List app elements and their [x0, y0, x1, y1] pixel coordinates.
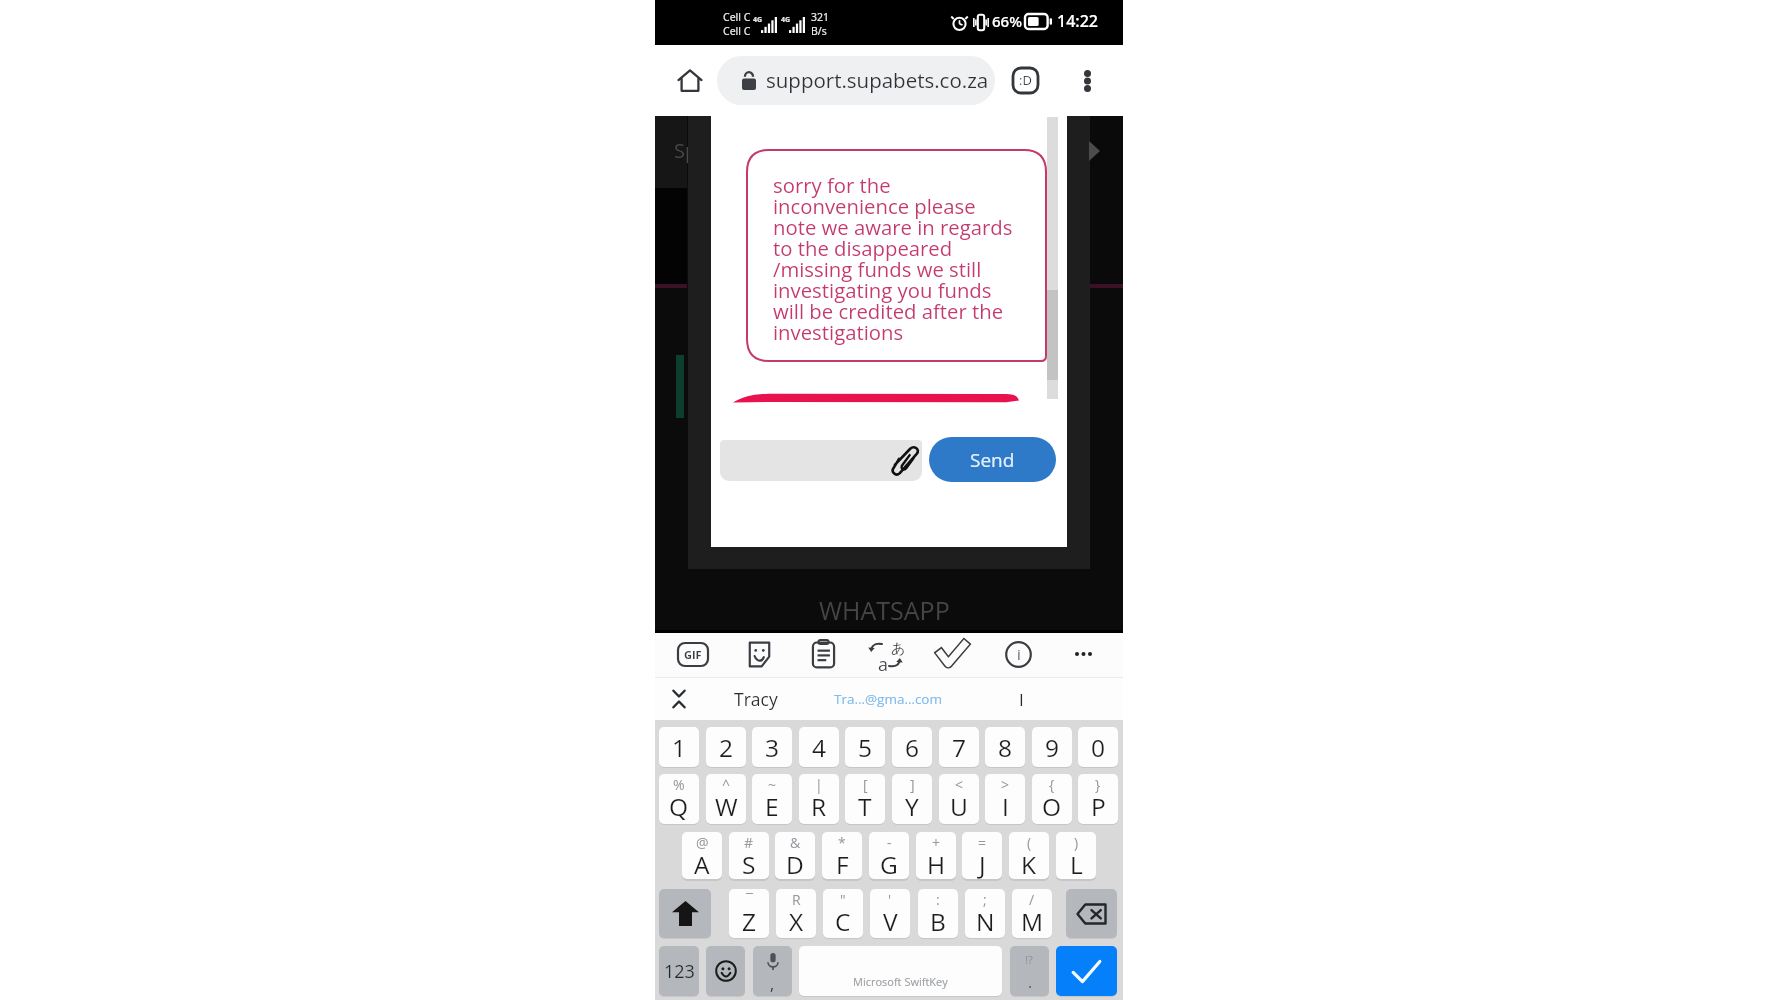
button[interactable]: Attach file [888, 441, 922, 480]
staticText: | [815, 775, 823, 794]
button[interactable]: 2 [706, 727, 746, 767]
button[interactable]: > [985, 774, 1025, 824]
staticText: ~ [768, 775, 777, 794]
button[interactable]: 0 [1078, 727, 1118, 767]
staticText: 14:22 [1057, 10, 1098, 32]
button[interactable]: 1 [659, 727, 699, 767]
button[interactable]: R [776, 889, 816, 938]
staticText: F [836, 848, 849, 879]
staticText: WHATSAPP [819, 593, 950, 627]
button[interactable]: - [869, 832, 909, 879]
button[interactable]: ¯ [729, 889, 769, 938]
staticText: ) [1074, 833, 1079, 852]
button[interactable]: Enter [1056, 946, 1117, 996]
staticText: = [978, 833, 987, 852]
button[interactable]: ] [892, 774, 932, 824]
staticText: P [1091, 790, 1106, 823]
staticText: 6 [905, 731, 920, 764]
staticText: / [1029, 890, 1035, 909]
button[interactable]: Emoji [706, 946, 745, 996]
button[interactable]: = [962, 832, 1002, 879]
button[interactable]: Type a message [720, 440, 922, 481]
button[interactable]: : [918, 889, 958, 938]
button[interactable]: I [986, 678, 1056, 720]
staticText: + [932, 833, 941, 852]
button[interactable]: support.supabets.co.za [717, 56, 995, 105]
staticText: Tra…@gma…com [834, 690, 942, 708]
button[interactable]: < [939, 774, 979, 824]
button[interactable]: Shift [659, 889, 711, 938]
button[interactable]: & [775, 832, 815, 879]
staticText: Z [742, 905, 757, 938]
staticText: あ [891, 640, 906, 658]
button[interactable]: * [822, 832, 862, 879]
staticText: sorry for the inconvenience please note … [773, 171, 1013, 345]
button[interactable]: { [1032, 774, 1072, 824]
staticText: 2 [719, 731, 734, 764]
button[interactable]: GIF [669, 632, 717, 676]
button[interactable]: Space [799, 946, 1002, 996]
button[interactable]: 4 [799, 727, 839, 767]
button[interactable]: Voice input [753, 946, 792, 996]
button[interactable]: # [729, 832, 769, 879]
staticText: Sp [674, 137, 698, 164]
staticText: X [789, 905, 804, 938]
button[interactable]: ( [1009, 832, 1049, 879]
button[interactable]: More [1059, 632, 1107, 676]
button[interactable]: 8 [985, 727, 1025, 767]
staticText: ' [888, 890, 892, 909]
staticText: ] [910, 775, 915, 794]
button[interactable]: ~ [752, 774, 792, 824]
button[interactable]: Punctuation [1010, 946, 1049, 996]
staticText: 4G [753, 15, 763, 25]
staticText: 66% [992, 11, 1022, 31]
button[interactable]: Backspace [1066, 889, 1117, 938]
button[interactable]: Stickers [735, 632, 783, 676]
button[interactable]: Tra…@gma…com [814, 678, 962, 720]
button[interactable]: + [916, 832, 956, 879]
staticText: a [878, 652, 889, 677]
staticText: Y [905, 790, 919, 823]
button[interactable]: 6 [892, 727, 932, 767]
button[interactable]: Translate [863, 632, 911, 676]
staticText: 321 B/s [811, 10, 830, 38]
staticText: 9 [1045, 731, 1060, 764]
button[interactable]: @ [682, 832, 722, 879]
button[interactable]: Switch tabs [999, 45, 1051, 116]
staticText: ^ [722, 775, 731, 794]
staticText: H [927, 848, 946, 879]
staticText: . [1028, 971, 1033, 993]
button[interactable]: ; [965, 889, 1005, 938]
button[interactable]: 7 [939, 727, 979, 767]
button[interactable]: / [1012, 889, 1052, 938]
button[interactable]: Editor [928, 632, 976, 676]
button[interactable]: ) [1056, 832, 1096, 879]
button[interactable]: % [659, 774, 699, 824]
button[interactable]: Send [929, 437, 1056, 482]
button[interactable]: 9 [1032, 727, 1072, 767]
button[interactable]: [ [845, 774, 885, 824]
staticText: S [742, 848, 756, 879]
staticText: T [858, 790, 872, 823]
button[interactable]: Tracy [710, 678, 802, 720]
button[interactable]: Clipboard [799, 632, 847, 676]
staticText: # [744, 833, 754, 852]
button[interactable]: Numbers [659, 946, 699, 996]
button[interactable]: 5 [845, 727, 885, 767]
button[interactable]: Hide suggestions [657, 678, 701, 720]
staticText: < [955, 775, 964, 794]
button[interactable]: } [1078, 774, 1118, 824]
staticText: & [790, 833, 801, 852]
button[interactable]: More options [1061, 45, 1113, 116]
button[interactable]: Home [664, 45, 716, 116]
button[interactable]: Info [994, 632, 1042, 676]
staticText: " [840, 890, 846, 909]
button[interactable]: | [799, 774, 839, 824]
staticText: D [786, 848, 804, 879]
button[interactable]: ^ [706, 774, 746, 824]
staticText: : [936, 890, 940, 909]
staticText: 4G [781, 15, 791, 25]
button[interactable]: ' [870, 889, 910, 938]
button[interactable]: " [823, 889, 863, 938]
button[interactable]: 3 [752, 727, 792, 767]
